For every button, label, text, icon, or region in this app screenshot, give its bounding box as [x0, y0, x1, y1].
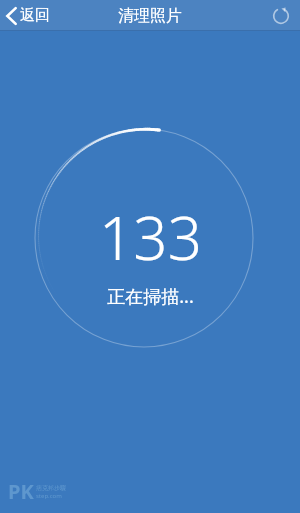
- button[interactable]: Refresh: [262, 0, 300, 31]
- staticText: 133: [99, 196, 202, 278]
- staticText: PK: [8, 478, 34, 505]
- button[interactable]: 返回: [0, 0, 60, 31]
- staticText: 痞克邦步驟: [36, 484, 66, 492]
- staticText: 清理照片: [118, 6, 182, 26]
- staticText: step.com: [36, 492, 62, 500]
- staticText: 返回: [20, 6, 50, 25]
- staticText: 正在掃描...: [107, 284, 194, 309]
